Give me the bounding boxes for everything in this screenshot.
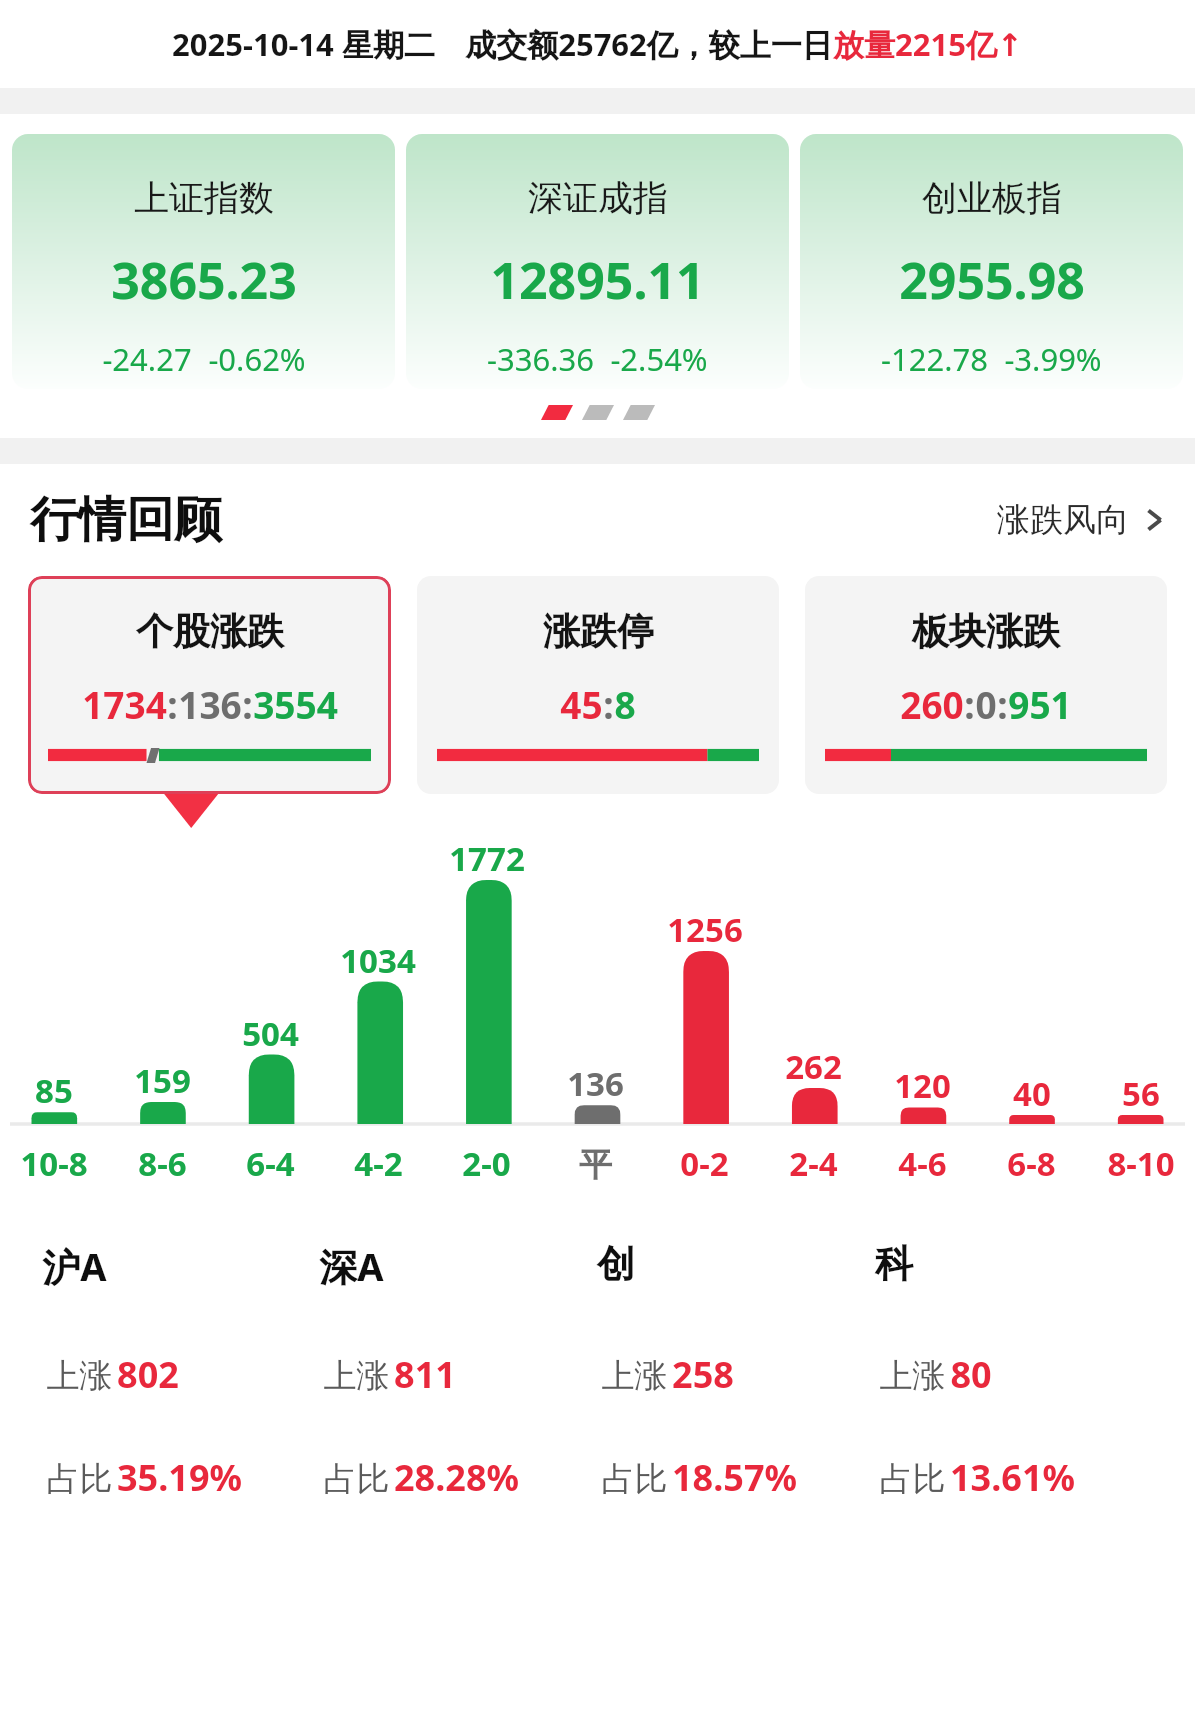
staticText: 涨跌风向 bbox=[997, 499, 1129, 541]
staticText: 成交额25762亿，较上一日 bbox=[465, 23, 833, 65]
staticText: 上涨 bbox=[42, 1352, 117, 1397]
staticText: 136 bbox=[567, 1061, 624, 1106]
staticText: 上涨 bbox=[875, 1352, 950, 1397]
staticText: -2.54% bbox=[610, 338, 708, 380]
staticText: 811 bbox=[394, 1350, 456, 1399]
staticText: 262 bbox=[785, 1044, 842, 1089]
staticText: 260 bbox=[900, 679, 964, 729]
staticText: 占比 bbox=[319, 1455, 394, 1500]
staticText: 120 bbox=[894, 1063, 951, 1108]
staticText: 创业板指 bbox=[922, 176, 1062, 220]
staticText: : bbox=[997, 679, 1008, 729]
staticText: : bbox=[167, 679, 178, 729]
staticText: 6-8 bbox=[1007, 1141, 1056, 1186]
staticText: 159 bbox=[134, 1058, 191, 1103]
button[interactable]: 深证成指 bbox=[406, 134, 789, 389]
staticText: 放量2215亿↑ bbox=[833, 23, 1023, 65]
staticText: 沪A bbox=[42, 1240, 107, 1292]
staticText: 上涨 bbox=[319, 1352, 394, 1397]
staticText: 56 bbox=[1122, 1071, 1160, 1116]
staticText: 2025-10-14 星期二 bbox=[172, 23, 435, 65]
staticText: 板块涨跌 bbox=[912, 608, 1060, 655]
staticText: 占比 bbox=[875, 1455, 950, 1500]
button[interactable]: 创业板指 bbox=[800, 134, 1183, 389]
staticText: -336.36 bbox=[487, 338, 594, 380]
staticText: 平 bbox=[579, 1144, 612, 1186]
staticText: 2-4 bbox=[789, 1141, 838, 1186]
staticText: 深证成指 bbox=[528, 176, 668, 220]
button[interactable]: 涨跌停 bbox=[417, 576, 779, 794]
staticText: 8-10 bbox=[1107, 1141, 1175, 1186]
staticText: 行情回顾 bbox=[30, 490, 222, 550]
staticText: 3554 bbox=[253, 679, 338, 729]
staticText: 2955.98 bbox=[899, 246, 1085, 314]
staticText: : bbox=[242, 679, 253, 729]
staticText: 951 bbox=[1008, 679, 1072, 729]
staticText: 上证指数 bbox=[134, 176, 274, 220]
staticText: 258 bbox=[672, 1350, 734, 1399]
button[interactable]: 上证指数 bbox=[12, 134, 395, 389]
staticText: 802 bbox=[117, 1350, 179, 1399]
staticText: 0-2 bbox=[680, 1141, 729, 1186]
staticText: : bbox=[603, 679, 614, 729]
staticText: 3865.23 bbox=[111, 246, 297, 314]
staticText: 0 bbox=[975, 679, 997, 729]
staticText: 上涨 bbox=[597, 1352, 672, 1397]
staticText: 占比 bbox=[597, 1455, 672, 1500]
staticText: 1034 bbox=[340, 938, 416, 983]
staticText: 6-4 bbox=[246, 1141, 295, 1186]
staticText: 40 bbox=[1013, 1071, 1051, 1116]
staticText: 8-6 bbox=[138, 1141, 187, 1186]
staticText: 1734 bbox=[82, 679, 167, 729]
staticText: 35.19% bbox=[117, 1453, 242, 1502]
staticText: 28.28% bbox=[394, 1453, 519, 1502]
staticText: 创 bbox=[597, 1240, 635, 1288]
button[interactable]: 个股涨跌 bbox=[28, 576, 391, 794]
staticText: : bbox=[964, 679, 975, 729]
staticText: 85 bbox=[35, 1068, 73, 1113]
staticText: 个股涨跌 bbox=[136, 608, 284, 655]
staticText: 4-2 bbox=[354, 1141, 403, 1186]
other: 涨跌风向 bbox=[1143, 503, 1165, 537]
button[interactable]: 涨跌风向 bbox=[997, 499, 1165, 541]
staticText: 2-0 bbox=[462, 1141, 511, 1186]
staticText: 10-8 bbox=[20, 1141, 88, 1186]
staticText: -24.27 bbox=[102, 338, 192, 380]
staticText: 18.57% bbox=[672, 1453, 797, 1502]
staticText: 504 bbox=[242, 1011, 299, 1056]
staticText: 80 bbox=[950, 1350, 992, 1399]
button[interactable]: 板块涨跌 bbox=[805, 576, 1167, 794]
staticText: -122.78 bbox=[881, 338, 988, 380]
staticText: -0.62% bbox=[208, 338, 306, 380]
staticText: 136 bbox=[178, 679, 242, 729]
staticText: 45 bbox=[560, 679, 603, 729]
staticText: 1256 bbox=[667, 907, 743, 952]
staticText: 4-6 bbox=[898, 1141, 947, 1186]
staticText: 科 bbox=[875, 1240, 913, 1288]
staticText: 12895.11 bbox=[490, 246, 705, 314]
staticText: 1772 bbox=[449, 836, 525, 881]
staticText: 深A bbox=[319, 1240, 384, 1292]
staticText: 占比 bbox=[42, 1455, 117, 1500]
staticText: 13.61% bbox=[950, 1453, 1075, 1502]
staticText: 8 bbox=[614, 679, 636, 729]
staticText: 涨跌停 bbox=[543, 608, 654, 655]
staticText: -3.99% bbox=[1004, 338, 1102, 380]
